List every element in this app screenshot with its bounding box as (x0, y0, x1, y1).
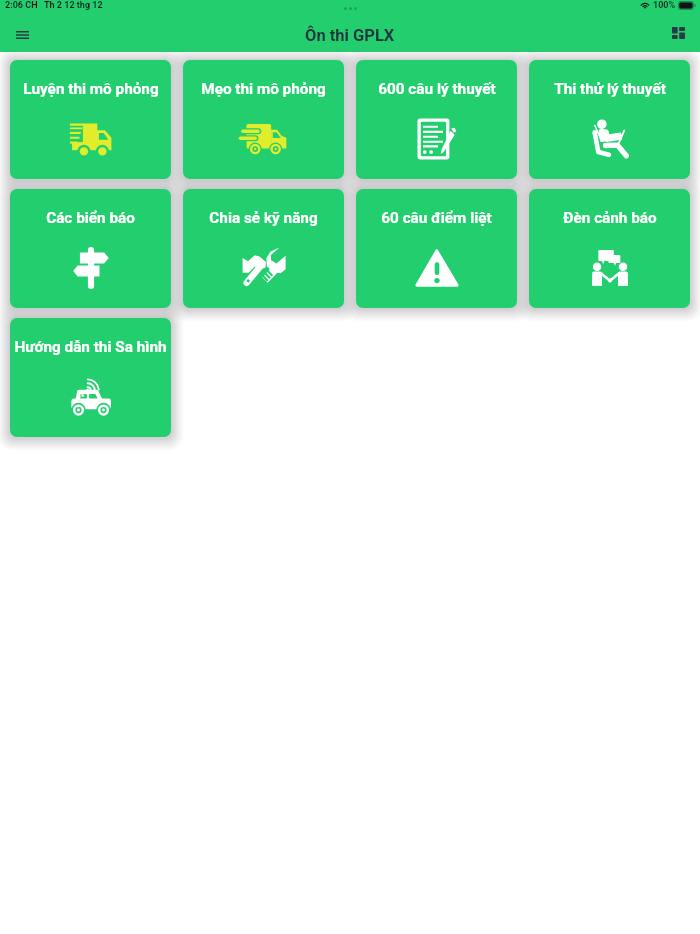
button[interactable]: 600 câu lý thuyết (356, 60, 517, 179)
staticText: Đèn cảnh báo (563, 209, 657, 227)
button[interactable]: Luyện thi mô phỏng (10, 60, 171, 179)
staticText: Chia sẻ kỹ năng (209, 209, 318, 227)
button[interactable]: 60 câu điểm liệt (356, 189, 517, 308)
staticText: Mẹo thi mô phỏng (201, 80, 326, 98)
staticText: Các biển báo (46, 209, 135, 227)
staticText: Hướng dẫn thi Sa hình (14, 338, 167, 356)
button[interactable]: Đèn cảnh báo (529, 189, 690, 308)
staticText: Thi thử lý thuyết (554, 80, 666, 98)
staticText: Ôn thi GPLX (305, 26, 395, 45)
button[interactable]: Các biển báo (10, 189, 171, 308)
staticText: 2:06 CH (5, 0, 38, 11)
staticText: 60 câu điểm liệt (381, 209, 492, 227)
button[interactable]: Dashboard (666, 21, 690, 45)
button[interactable]: Hướng dẫn thi Sa hình (10, 318, 171, 437)
staticText: 100% (653, 0, 676, 11)
button[interactable]: Chia sẻ kỹ năng (183, 189, 344, 308)
staticText: Th 2 12 thg 12 (44, 0, 103, 11)
button[interactable]: Menu (10, 23, 34, 47)
staticText: 600 câu lý thuyết (378, 80, 496, 98)
staticText: Luyện thi mô phỏng (23, 80, 159, 98)
button[interactable]: Thi thử lý thuyết (529, 60, 690, 179)
button[interactable]: Mẹo thi mô phỏng (183, 60, 344, 179)
